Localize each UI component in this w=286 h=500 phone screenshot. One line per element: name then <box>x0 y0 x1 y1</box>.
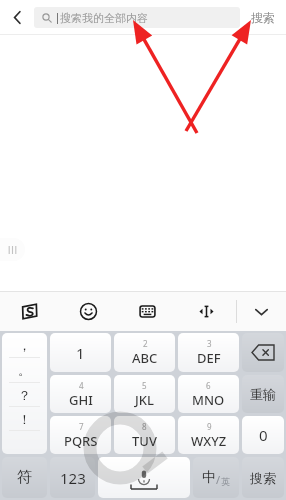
staticText: 6 <box>206 380 211 391</box>
button[interactable]: 7 <box>50 416 111 454</box>
button[interactable]: 6 <box>178 375 239 413</box>
staticText: DEF <box>197 349 221 367</box>
staticText: 3 <box>207 338 212 349</box>
staticText: ABC <box>132 349 158 367</box>
staticText: JKL <box>135 391 154 409</box>
button[interactable]: Switch keyboard <box>118 292 177 331</box>
staticText: TUV <box>132 432 157 450</box>
button[interactable]: Sogou input <box>0 292 59 331</box>
staticText: 4 <box>79 380 84 391</box>
button[interactable]: 0 <box>242 416 284 454</box>
button[interactable]: 4 <box>50 375 111 413</box>
staticText: PQRS <box>64 432 98 450</box>
button[interactable]: 搜索 <box>240 0 286 34</box>
button[interactable] <box>98 457 190 498</box>
staticText: 搜索 <box>251 10 275 25</box>
staticText: 。 <box>18 362 31 378</box>
staticText: 5 <box>142 380 147 391</box>
button[interactable]: ， <box>2 333 47 357</box>
staticText: 搜索我的全部内容 <box>60 11 148 25</box>
staticText: 1 <box>76 343 85 363</box>
button[interactable]: Back <box>0 0 34 34</box>
staticText: / <box>216 472 221 487</box>
staticText: 8 <box>142 421 147 432</box>
button[interactable]: 123 <box>50 457 95 498</box>
staticText: MNO <box>192 391 225 409</box>
staticText: 0 <box>259 425 268 445</box>
staticText: WXYZ <box>191 432 227 450</box>
staticText: 符 <box>17 468 32 487</box>
staticText: ？ <box>18 387 31 403</box>
button[interactable]: 8 <box>114 416 175 454</box>
button[interactable]: 1 <box>50 333 111 372</box>
button[interactable]: 2 <box>114 333 175 372</box>
button[interactable]: 。 <box>2 358 47 382</box>
staticText: 9 <box>207 421 212 432</box>
button[interactable]: Move cursor <box>177 292 236 331</box>
button[interactable]: ？ <box>2 383 47 406</box>
button[interactable]: 搜索我的全部内容 <box>34 7 240 28</box>
button[interactable]: 中 <box>193 457 239 498</box>
button[interactable] <box>2 431 47 454</box>
button[interactable]: Open panel <box>0 238 25 261</box>
staticText: 123 <box>60 468 86 488</box>
staticText: 中 <box>202 469 216 487</box>
button[interactable]: Emoji <box>59 292 118 331</box>
staticText: GHI <box>69 391 93 409</box>
button[interactable]: Hide keyboard <box>237 292 286 331</box>
button[interactable]: 重输 <box>242 375 284 413</box>
staticText: ！ <box>18 411 31 427</box>
button[interactable]: 搜索 <box>242 457 284 498</box>
staticText: 重输 <box>250 386 276 402</box>
button[interactable]: 符 <box>2 457 47 498</box>
button[interactable]: 9 <box>178 416 239 454</box>
button[interactable]: 5 <box>114 375 175 413</box>
staticText: 英 <box>221 476 230 487</box>
staticText: 2 <box>143 338 148 349</box>
staticText: 搜索 <box>250 470 276 486</box>
button[interactable]: 3 <box>178 333 239 372</box>
staticText: 7 <box>79 421 84 432</box>
button[interactable]: ！ <box>2 407 47 430</box>
staticText: ， <box>18 337 31 353</box>
button[interactable] <box>242 333 284 372</box>
